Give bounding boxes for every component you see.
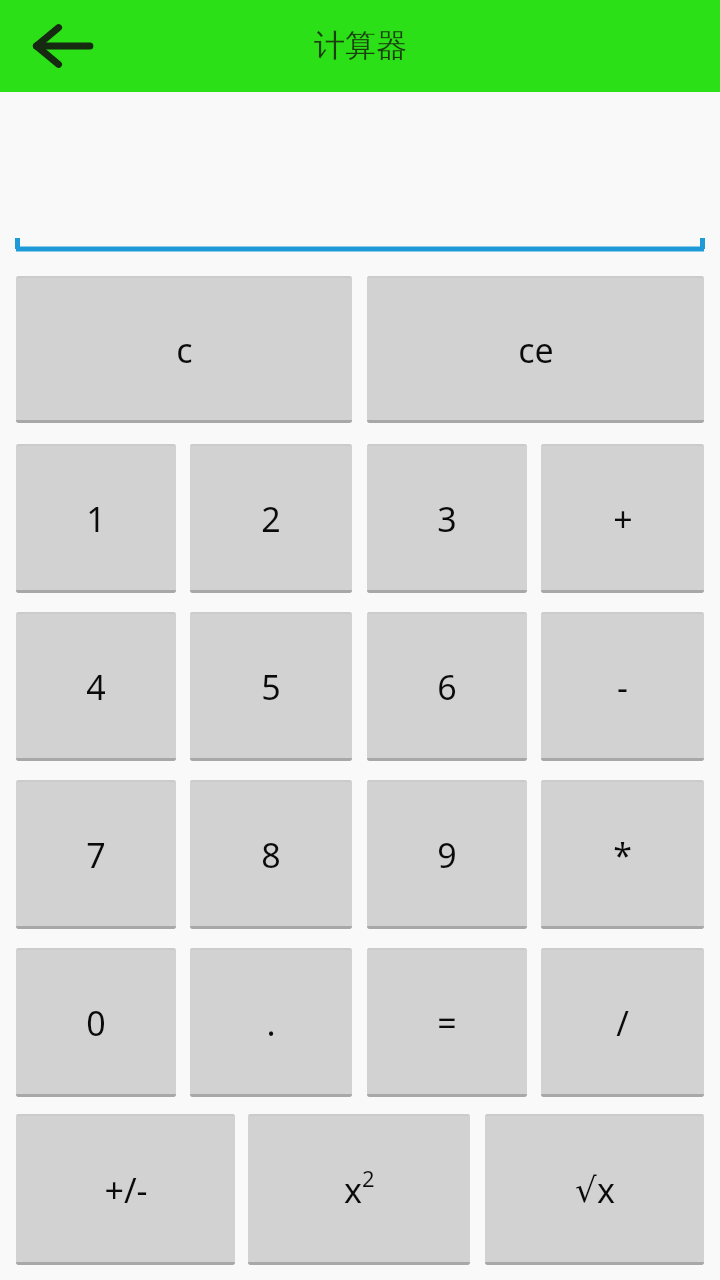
button[interactable]: 8 xyxy=(190,780,352,929)
staticText: 3 xyxy=(437,496,457,542)
staticText: 2 xyxy=(261,496,281,542)
staticText: x xyxy=(344,1167,362,1213)
staticText: 0 xyxy=(86,1000,106,1046)
staticText: 7 xyxy=(86,832,106,878)
button[interactable]: = xyxy=(367,948,527,1097)
staticText: 6 xyxy=(437,664,457,710)
staticText: 8 xyxy=(261,832,281,878)
button[interactable]: 5 xyxy=(190,612,352,761)
button[interactable]: - xyxy=(541,612,704,761)
button[interactable]: + xyxy=(541,444,704,593)
staticText: = xyxy=(437,1000,457,1046)
button[interactable]: √ xyxy=(485,1114,704,1265)
button[interactable]: 1 xyxy=(16,444,176,593)
button[interactable]: x xyxy=(248,1114,470,1265)
staticText: 2 xyxy=(362,1163,375,1193)
button[interactable]: 6 xyxy=(367,612,527,761)
staticText: 5 xyxy=(261,664,281,710)
button[interactable]: / xyxy=(541,948,704,1097)
staticText: + xyxy=(613,496,633,542)
button[interactable]: 9 xyxy=(367,780,527,929)
staticText: * xyxy=(613,832,632,878)
button[interactable]: * xyxy=(541,780,704,929)
button[interactable]: ce xyxy=(367,276,704,423)
staticText: 4 xyxy=(86,664,106,710)
staticText: +/- xyxy=(104,1167,148,1213)
staticText: √ xyxy=(575,1170,597,1210)
button[interactable]: 2 xyxy=(190,444,352,593)
button[interactable]: Back xyxy=(26,14,98,78)
staticText: . xyxy=(266,1000,276,1046)
staticText: x xyxy=(597,1167,615,1213)
button[interactable]: +/- xyxy=(16,1114,235,1265)
staticText: / xyxy=(616,1000,629,1046)
staticText: 9 xyxy=(437,832,457,878)
button[interactable]: 3 xyxy=(367,444,527,593)
staticText: 1 xyxy=(86,496,106,542)
staticText: ce xyxy=(518,327,554,373)
staticText: - xyxy=(617,664,628,710)
button[interactable]: . xyxy=(190,948,352,1097)
button[interactable]: 7 xyxy=(16,780,176,929)
button[interactable]: 4 xyxy=(16,612,176,761)
button[interactable]: 0 xyxy=(16,948,176,1097)
button[interactable]: c xyxy=(16,276,352,423)
staticText: c xyxy=(176,327,193,373)
staticText: 计算器 xyxy=(314,26,407,65)
